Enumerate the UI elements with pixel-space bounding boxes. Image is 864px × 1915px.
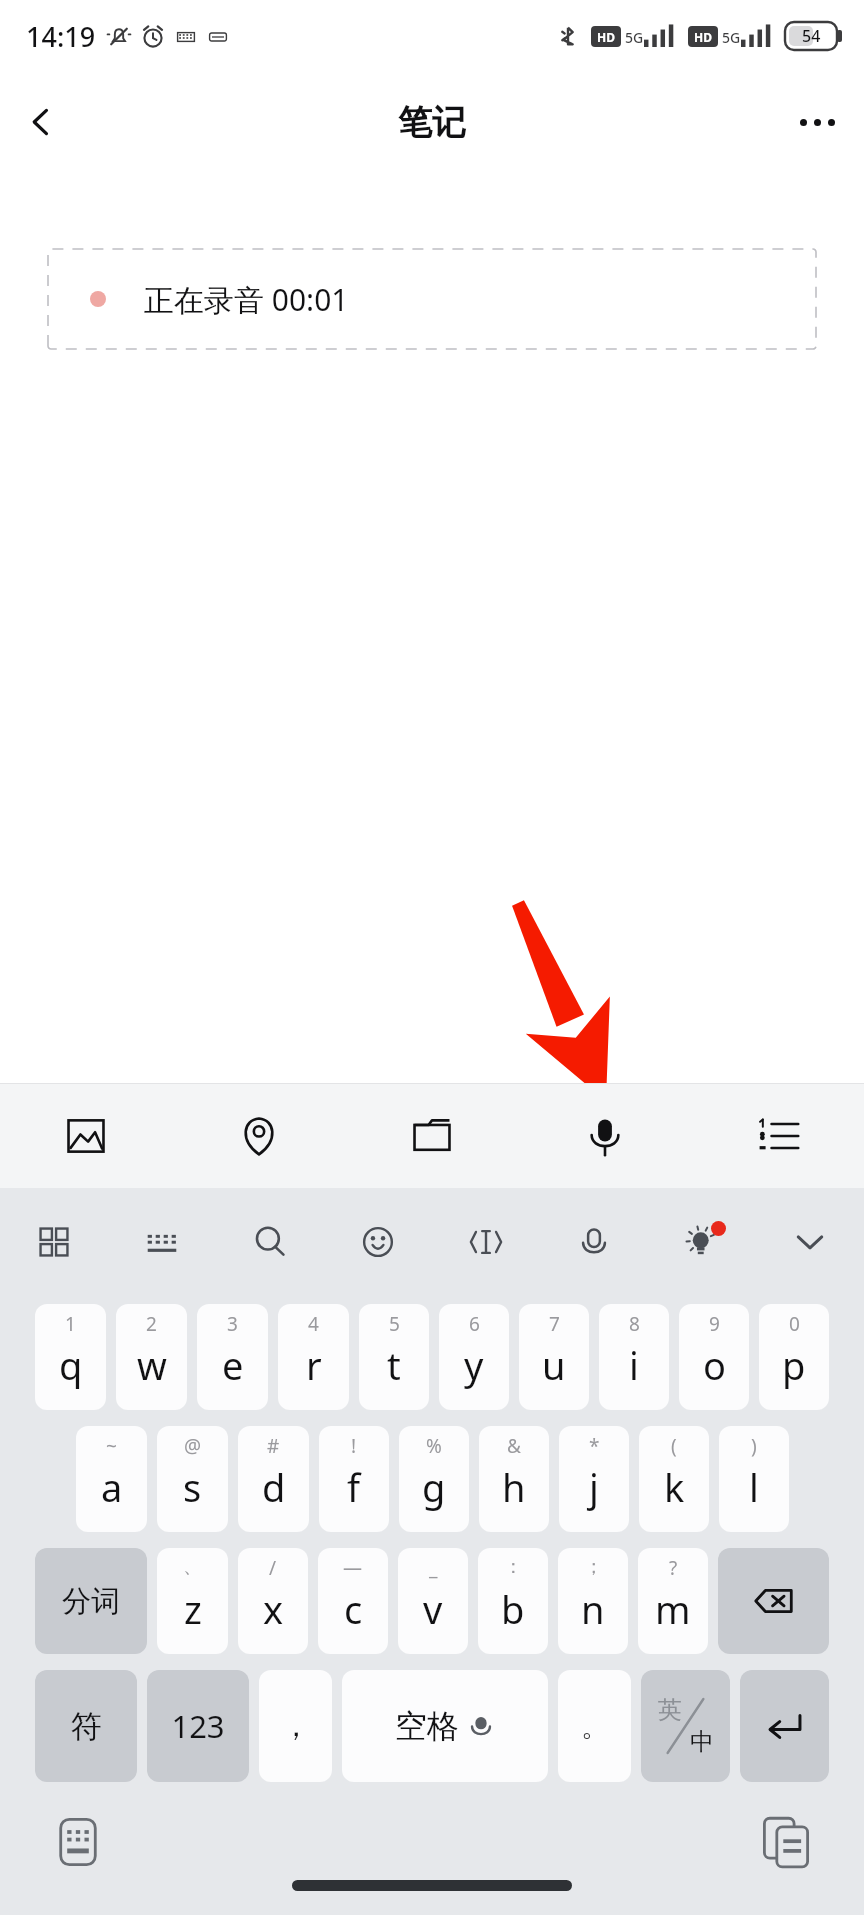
staticText: 7 <box>549 1311 560 1337</box>
staticText: ( <box>671 1433 677 1459</box>
button[interactable]: 分词 <box>35 1548 147 1654</box>
staticText: 、 <box>183 1555 202 1579</box>
button[interactable]: 1 <box>35 1304 106 1410</box>
staticText: 2 <box>146 1311 157 1337</box>
button[interactable]: — <box>318 1548 388 1654</box>
staticText: q <box>59 1339 83 1391</box>
staticText: k <box>664 1461 685 1513</box>
staticText: 0 <box>789 1311 800 1337</box>
staticText: l <box>749 1461 759 1513</box>
button[interactable]: Suggestions <box>648 1188 756 1296</box>
staticText: 正在录音 00:01 <box>144 279 349 320</box>
staticText: & <box>507 1433 521 1459</box>
button[interactable]: 5 <box>359 1304 429 1410</box>
staticText: ! <box>351 1433 357 1459</box>
button[interactable]: 8 <box>599 1304 669 1410</box>
button[interactable]: Space <box>342 1670 548 1782</box>
button[interactable]: 9 <box>679 1304 749 1410</box>
button[interactable]: ( <box>639 1426 709 1532</box>
staticText: e <box>222 1339 244 1391</box>
button[interactable]: 、 <box>157 1548 228 1654</box>
staticText: 分词 <box>62 1583 120 1620</box>
staticText: r <box>306 1339 322 1391</box>
button[interactable]: & <box>479 1426 549 1532</box>
staticText: 空格 <box>395 1706 459 1746</box>
staticText: 14:19 <box>26 18 96 55</box>
staticText: w <box>137 1339 167 1391</box>
staticText: g <box>422 1461 446 1513</box>
button[interactable]: ； <box>558 1548 628 1654</box>
staticText: 4 <box>308 1311 319 1337</box>
staticText: z <box>184 1583 202 1635</box>
button[interactable]: 。 <box>558 1670 631 1782</box>
button[interactable]: ! <box>319 1426 389 1532</box>
button[interactable]: / <box>238 1548 308 1654</box>
button[interactable]: Voice record <box>518 1084 691 1188</box>
button[interactable]: 3 <box>197 1304 268 1410</box>
button[interactable]: Voice input <box>540 1188 648 1296</box>
staticText: 123 <box>171 1705 225 1747</box>
button[interactable]: ) <box>719 1426 789 1532</box>
staticText: * <box>589 1433 600 1459</box>
button[interactable]: 2 <box>116 1304 187 1410</box>
button[interactable]: Insert image <box>0 1084 172 1188</box>
button[interactable]: ： <box>478 1548 548 1654</box>
button[interactable]: 123 <box>147 1670 249 1782</box>
button[interactable]: Add location <box>172 1084 345 1188</box>
button[interactable]: @ <box>157 1426 228 1532</box>
staticText: i <box>629 1339 639 1391</box>
staticText: v <box>423 1583 443 1635</box>
staticText: u <box>542 1339 566 1391</box>
staticText: ? <box>669 1555 678 1581</box>
button[interactable]: 7 <box>519 1304 589 1410</box>
staticText: x <box>263 1583 284 1635</box>
staticText: % <box>426 1433 442 1459</box>
staticText: HD <box>694 29 712 45</box>
staticText: ~ <box>106 1433 117 1459</box>
button[interactable]: ~ <box>76 1426 147 1532</box>
button[interactable]: * <box>559 1426 629 1532</box>
button[interactable]: Clipboard <box>752 1808 820 1876</box>
button[interactable]: Hide keyboard <box>756 1188 864 1296</box>
staticText: ： <box>504 1555 523 1579</box>
staticText: 符 <box>71 1707 102 1746</box>
staticText: p <box>782 1339 806 1391</box>
button[interactable]: % <box>399 1426 469 1532</box>
button[interactable]: Emoji <box>324 1188 432 1296</box>
button[interactable]: Text edit <box>432 1188 540 1296</box>
button[interactable]: 符 <box>35 1670 137 1782</box>
button[interactable]: Ordered list <box>691 1084 864 1188</box>
button[interactable]: Backspace <box>718 1548 829 1654</box>
button[interactable]: Grid <box>0 1188 108 1296</box>
staticText: n <box>581 1583 605 1635</box>
staticText: 54 <box>802 25 821 47</box>
button[interactable]: 4 <box>278 1304 349 1410</box>
button[interactable]: 正在录音 00:01 <box>48 249 816 349</box>
button[interactable]: _ <box>398 1548 468 1654</box>
staticText: s <box>183 1461 202 1513</box>
button[interactable]: ? <box>638 1548 708 1654</box>
staticText: 。 <box>581 1709 609 1744</box>
button[interactable]: Keyboard layout <box>108 1188 216 1296</box>
button[interactable]: Back <box>8 89 74 155</box>
button[interactable]: 0 <box>759 1304 829 1410</box>
button[interactable]: Keyboard layout switch <box>44 1808 112 1876</box>
staticText: o <box>703 1339 726 1391</box>
button[interactable]: More options <box>784 89 850 155</box>
staticText: 5 <box>389 1311 400 1337</box>
staticText: 1 <box>65 1311 76 1337</box>
button[interactable]: Attach file <box>345 1084 518 1188</box>
staticText: 中 <box>690 1727 714 1757</box>
button[interactable]: Switch language <box>641 1670 730 1782</box>
button[interactable]: ， <box>259 1670 332 1782</box>
button[interactable]: Search <box>216 1188 324 1296</box>
staticText: j <box>589 1461 599 1513</box>
button[interactable]: Enter <box>740 1670 829 1782</box>
button[interactable]: 6 <box>439 1304 509 1410</box>
staticText: HD <box>597 29 615 45</box>
staticText: c <box>344 1583 363 1635</box>
staticText: d <box>262 1461 286 1513</box>
staticText: 5G <box>625 28 644 47</box>
staticText: ) <box>751 1433 757 1459</box>
button[interactable]: # <box>238 1426 309 1532</box>
